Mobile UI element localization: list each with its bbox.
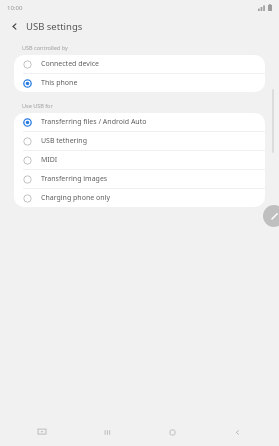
staticText: USB settings [26,20,83,33]
button[interactable]: This phone [14,74,265,92]
staticText: 10:00 [7,4,23,12]
staticText: Charging phone only [41,193,110,203]
staticText: MIDI [41,155,58,165]
button[interactable]: Edit [263,205,279,227]
staticText: USB controlled by [22,44,68,51]
staticText: Transferring files / Android Auto [41,117,147,127]
button[interactable]: Transferring files / Android Auto [14,113,265,131]
staticText: Use USB for [22,102,53,109]
staticText: Connected device [41,59,100,69]
button[interactable]: Charging phone only [14,189,265,207]
button[interactable]: Hide keyboard [19,418,65,446]
button[interactable]: Transferring images [14,170,265,188]
staticText: Transferring images [41,174,108,184]
button[interactable]: MIDI [14,151,265,169]
button[interactable]: Home [149,418,195,446]
staticText: USB tethering [41,136,87,146]
button[interactable]: Connected device [14,55,265,73]
button[interactable]: USB tethering [14,132,265,150]
button[interactable]: Back [6,18,22,34]
button[interactable]: Recent apps [84,418,130,446]
staticText: This phone [41,78,78,88]
